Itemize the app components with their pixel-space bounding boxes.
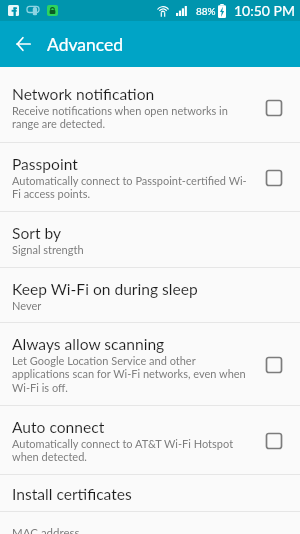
button[interactable]: Navigate up: [0, 21, 47, 67]
button[interactable]: Auto connect: [0, 406, 300, 475]
staticText: Always allow scanning: [12, 335, 165, 354]
button[interactable]: Sort by: [0, 212, 300, 268]
staticText: Automatically connect to Passpoint-certi…: [12, 174, 250, 200]
staticText: Automatically connect to AT&T Wi-Fi Hots…: [12, 437, 250, 463]
staticText: Network notification: [12, 85, 155, 104]
button[interactable]: Passpoint: [0, 143, 300, 212]
button[interactable]: Keep Wi-Fi on during sleep: [0, 268, 300, 323]
staticText: Let Google Location Service and other ap…: [12, 354, 250, 394]
staticText: Passpoint: [12, 155, 78, 174]
staticText: Signal strength: [12, 243, 84, 256]
staticText: Auto connect: [12, 418, 105, 437]
staticText: 10:50 PM: [234, 2, 295, 19]
button[interactable]: Always allow scanning: [0, 323, 300, 406]
staticText: Sort by: [12, 224, 62, 243]
staticText: Keep Wi-Fi on during sleep: [12, 280, 198, 299]
staticText: Install certificates: [12, 485, 132, 504]
staticText: 88%: [196, 5, 216, 17]
staticText: MAC address: [12, 526, 80, 534]
staticText: Never: [12, 299, 42, 312]
button[interactable]: Network notification: [0, 67, 300, 143]
button[interactable]: MAC address: [0, 512, 300, 534]
staticText: Advanced: [47, 34, 123, 55]
button[interactable]: Install certificates: [0, 475, 300, 512]
staticText: Receive notifications when open networks…: [12, 104, 250, 130]
